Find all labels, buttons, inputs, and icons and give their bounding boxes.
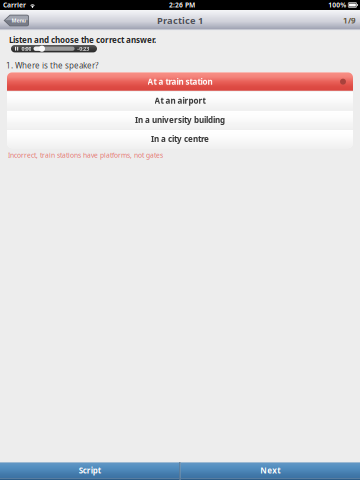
staticText: 0:00 bbox=[21, 45, 31, 52]
staticText: -0:23 bbox=[77, 45, 89, 52]
staticText: In a university building bbox=[135, 114, 225, 125]
button[interactable]: Menu bbox=[3, 14, 29, 26]
staticText: Carrier bbox=[3, 1, 26, 9]
staticText: At a train station bbox=[147, 76, 212, 87]
button[interactable]: In a city centre bbox=[7, 130, 353, 148]
staticText: 100% bbox=[328, 1, 346, 9]
staticText: Practice 1 bbox=[157, 14, 203, 27]
button[interactable]: At a train station bbox=[7, 72, 353, 91]
button[interactable]: Script bbox=[0, 462, 179, 480]
staticText: Script bbox=[79, 465, 101, 476]
staticText: Menu bbox=[11, 17, 25, 24]
button[interactable]: Next bbox=[180, 462, 360, 480]
button[interactable]: In a university building bbox=[7, 111, 353, 129]
button[interactable]: At an airport bbox=[7, 91, 353, 110]
staticText: 1/9 bbox=[343, 15, 356, 26]
staticText: Next bbox=[260, 465, 280, 476]
button[interactable]: 1/9 bbox=[343, 15, 356, 26]
staticText: Incorrect, train stations have platforms… bbox=[8, 151, 163, 160]
staticText: 1. Where is the speaker? bbox=[6, 60, 98, 71]
staticText: In a city centre bbox=[151, 134, 209, 144]
staticText: 2:26 PM bbox=[169, 1, 195, 9]
staticText: At an airport bbox=[154, 95, 205, 106]
staticText: Listen and choose the correct answer. bbox=[9, 35, 156, 45]
